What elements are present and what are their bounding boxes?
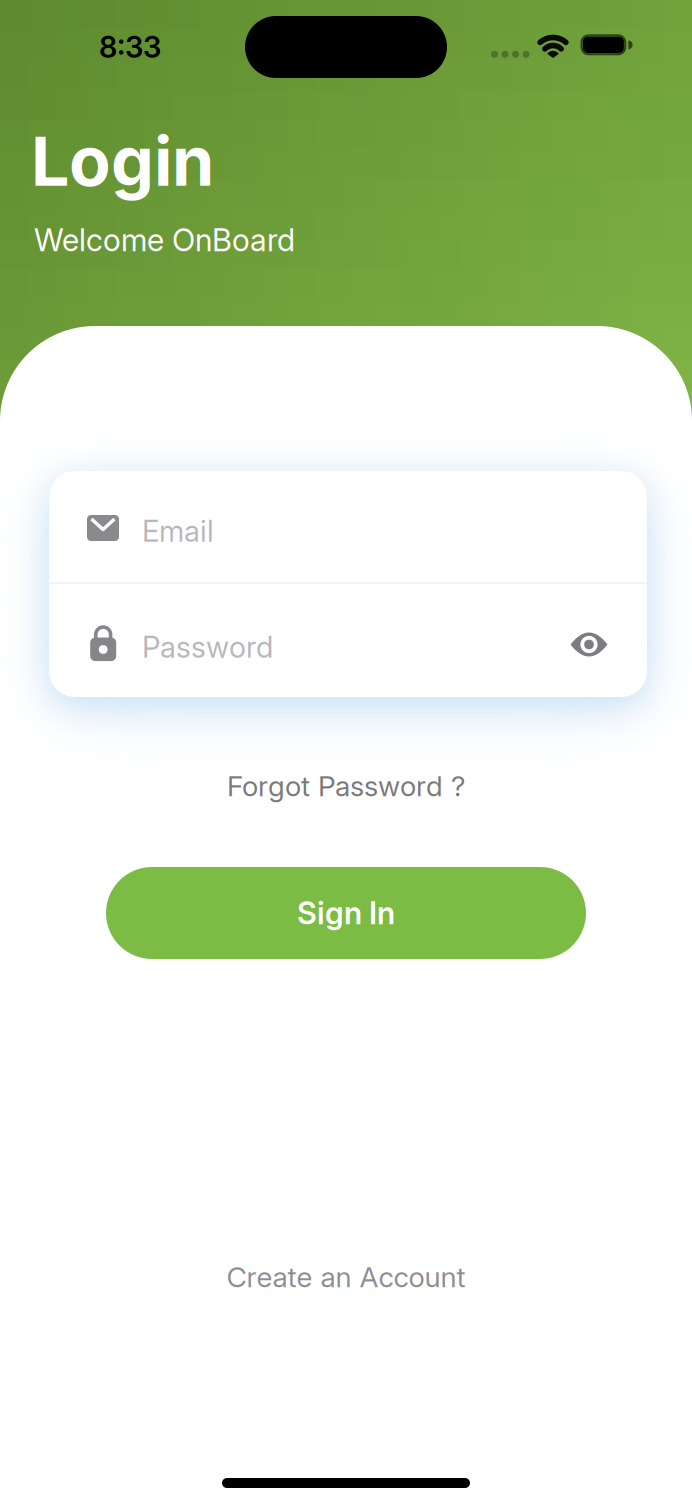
staticText: Password (142, 630, 273, 664)
staticText: Forgot Password ? (227, 769, 465, 802)
staticText: Login (31, 121, 214, 201)
staticText: Email (142, 514, 214, 548)
staticText: Create an Account (226, 1260, 465, 1293)
button[interactable] (49, 471, 647, 583)
button[interactable] (49, 584, 549, 696)
button[interactable]: Create an Account (226, 1260, 465, 1293)
button[interactable]: Forgot Password ? (227, 769, 465, 802)
button[interactable] (553, 608, 625, 680)
staticText: 8:33 (99, 30, 161, 64)
button[interactable]: Sign In (106, 867, 586, 959)
staticText: Welcome OnBoard (34, 222, 295, 258)
staticText: Sign In (297, 895, 395, 931)
